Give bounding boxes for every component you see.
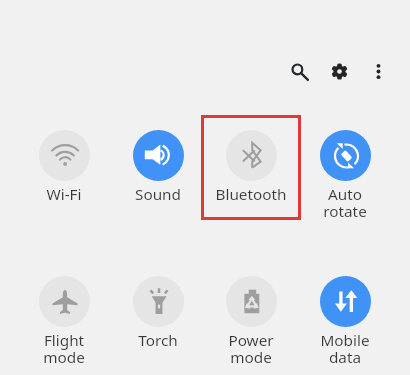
button[interactable]: More options	[360, 53, 397, 90]
button[interactable]: Settings	[321, 53, 358, 90]
button[interactable]: Torch	[113, 276, 203, 351]
staticText: Flight mode	[19, 330, 109, 367]
staticText: Sound	[113, 184, 203, 205]
staticText: Bluetooth	[206, 184, 296, 205]
button[interactable]: Auto rotate	[300, 130, 390, 221]
button[interactable]: Search	[281, 53, 318, 90]
button[interactable]: Power mode	[206, 276, 296, 367]
staticText: Auto rotate	[300, 184, 390, 221]
button[interactable]: Wi-Fi	[19, 130, 109, 205]
staticText: Power mode	[206, 330, 296, 367]
staticText: Mobile data	[300, 330, 390, 367]
button[interactable]: Mobile data	[300, 276, 390, 367]
button[interactable]: Sound	[113, 130, 203, 205]
staticText: Wi-Fi	[19, 184, 109, 205]
staticText: Torch	[113, 330, 203, 351]
button[interactable]: Bluetooth	[206, 130, 296, 205]
button[interactable]: Flight mode	[19, 276, 109, 367]
